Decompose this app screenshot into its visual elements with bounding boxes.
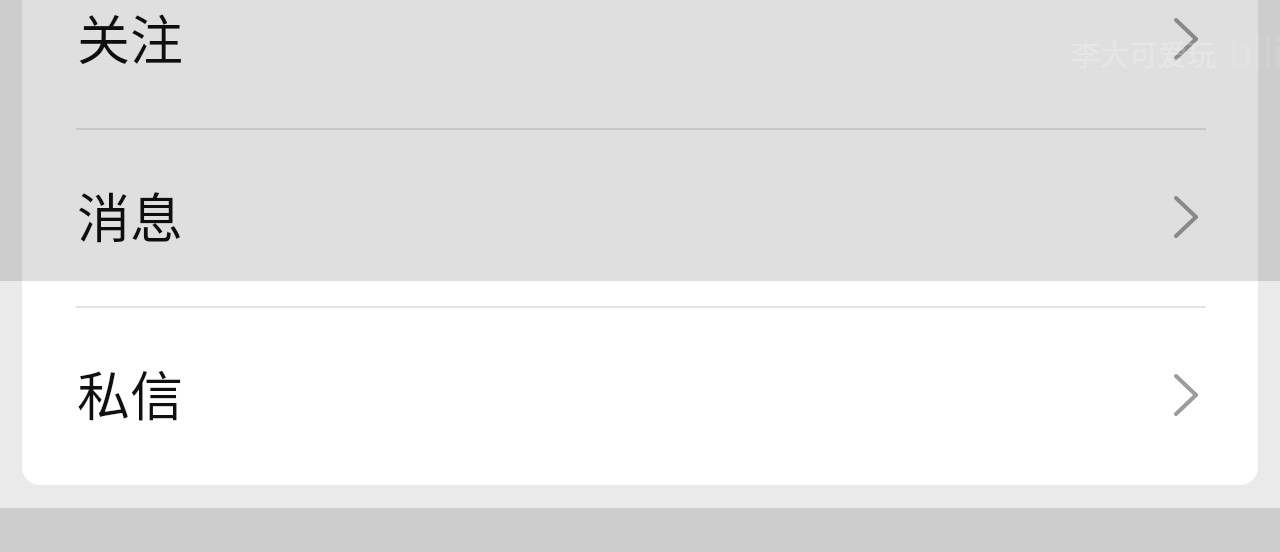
staticText: bili bbox=[1228, 24, 1280, 78]
other: Open 消息 bbox=[1174, 196, 1198, 238]
other: Open 私信 bbox=[1174, 374, 1198, 416]
staticText: 消息 bbox=[77, 177, 183, 254]
staticText: 私信 bbox=[77, 355, 183, 432]
button[interactable]: 消息 bbox=[22, 128, 1258, 306]
other: Open 关注 bbox=[1174, 18, 1198, 60]
button[interactable]: 关注 bbox=[22, 0, 1258, 128]
staticText: 李大可爱玩 bbox=[1071, 32, 1217, 74]
button[interactable]: 私信 bbox=[22, 306, 1258, 484]
staticText: 关注 bbox=[77, 0, 183, 76]
